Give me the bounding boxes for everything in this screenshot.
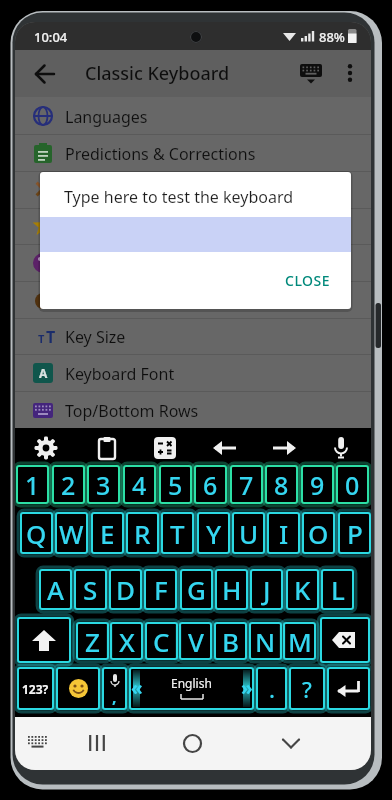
button[interactable]: W [55,512,88,554]
staticText: 5 [168,468,183,502]
button[interactable]: U [232,512,265,554]
staticText: . [269,674,275,704]
button[interactable]: V [179,622,212,660]
staticText: Top/Bottom Rows [65,400,199,422]
button[interactable] [15,208,371,244]
staticText: L [331,572,345,607]
button[interactable]: 5 [159,465,192,504]
button[interactable] [90,431,124,465]
staticText: « [131,675,143,701]
staticText: H [222,572,242,607]
button[interactable] [324,431,358,465]
button[interactable]: A [39,569,72,610]
button[interactable]: J [250,569,283,610]
staticText: D [116,572,136,607]
button[interactable]: 123? [17,667,54,710]
button[interactable]: ? [289,667,325,710]
staticText: Q [26,516,47,551]
button[interactable]: 2 [52,465,85,504]
button[interactable]: « [129,667,254,710]
button[interactable]: A [15,355,371,391]
staticText: N [255,624,276,659]
staticText: A [47,572,65,607]
button[interactable]: 1 [16,465,49,504]
button[interactable]: L [321,569,354,610]
button[interactable] [15,245,371,281]
button[interactable]: S [74,569,107,610]
button[interactable] [208,431,242,465]
button[interactable]: 6 [194,465,227,504]
button[interactable] [266,431,300,465]
staticText: P [347,516,363,551]
button[interactable]: H [215,569,248,610]
staticText: 3 [96,468,111,502]
staticText: C [153,624,170,659]
button[interactable]: CLOSE [277,264,339,296]
button[interactable]: T [15,318,371,354]
button[interactable]: Y [197,512,230,554]
button[interactable]: 7 [230,465,263,504]
staticText: W [59,516,84,551]
button[interactable]: O [302,512,335,554]
button[interactable] [17,617,71,663]
staticText: B [222,624,240,659]
staticText: 10:04 [34,28,68,46]
staticText: Y [206,516,222,551]
button[interactable]: K [286,569,319,610]
button[interactable]: 4 [123,465,156,504]
button[interactable] [29,58,61,90]
button[interactable]: R [126,512,159,554]
staticText: A [39,365,48,381]
button[interactable]: 8 [265,465,298,504]
button[interactable]: . [256,667,287,710]
button[interactable] [276,728,306,758]
staticText: 7 [239,468,254,502]
staticText: 0 [345,468,360,502]
button[interactable]: B [214,622,247,660]
button[interactable]: Z [76,622,109,660]
button[interactable] [15,171,371,207]
button[interactable]: 0 [336,465,369,504]
button[interactable]: Languages [15,98,371,134]
button[interactable]: C [145,622,178,660]
button[interactable] [148,431,182,465]
button[interactable] [320,617,370,663]
button[interactable]: Q [20,512,53,554]
button[interactable]: M [283,622,316,660]
button[interactable]: , [102,667,127,710]
button[interactable]: I [267,512,300,554]
button[interactable] [25,730,51,756]
staticText: » [241,675,253,701]
button[interactable] [327,667,370,710]
staticText: T [46,326,56,348]
button[interactable]: 3 [87,465,120,504]
button[interactable]: E [91,512,124,554]
button[interactable]: Predictions & Corrections [15,135,371,171]
button[interactable]: F [144,569,177,610]
staticText: , [112,686,117,708]
staticText: Key Size [65,326,126,348]
button[interactable]: P [338,512,371,554]
staticText: English [171,675,212,691]
staticText: M [288,624,312,659]
button[interactable]: T [161,512,194,554]
staticText: O [308,516,329,551]
button[interactable]: G [180,569,213,610]
button[interactable] [335,58,365,88]
button[interactable]: D [109,569,142,610]
staticText: 123? [22,681,49,697]
button[interactable] [82,728,112,758]
button[interactable] [56,667,100,710]
button[interactable]: Top/Bottom Rows [15,392,371,428]
staticText: G [187,572,206,607]
button[interactable]: X [110,622,143,660]
button[interactable] [295,58,327,90]
button[interactable] [29,431,63,465]
staticText: R [134,516,151,551]
button[interactable] [15,282,371,318]
button[interactable]: 9 [301,465,334,504]
staticText: 6 [203,468,218,502]
button[interactable]: N [249,622,282,660]
staticText: Classic Keyboard [85,61,230,86]
button[interactable] [177,728,207,758]
